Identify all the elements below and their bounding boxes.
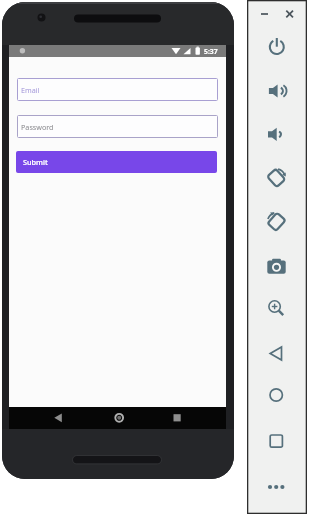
button[interactable] bbox=[264, 255, 289, 279]
staticText: Submit bbox=[23, 157, 48, 167]
staticText: Password bbox=[21, 122, 54, 132]
button[interactable] bbox=[43, 407, 73, 429]
button[interactable] bbox=[264, 210, 289, 234]
button[interactable] bbox=[162, 407, 192, 429]
button[interactable] bbox=[264, 429, 289, 453]
button[interactable] bbox=[264, 294, 289, 318]
button[interactable] bbox=[264, 383, 289, 407]
button[interactable]: Submit bbox=[16, 151, 217, 173]
button[interactable] bbox=[104, 407, 134, 429]
button[interactable] bbox=[282, 7, 296, 21]
button[interactable] bbox=[257, 7, 271, 21]
button[interactable] bbox=[264, 166, 289, 190]
button[interactable] bbox=[264, 35, 289, 59]
button[interactable] bbox=[264, 79, 289, 103]
staticText: 5:37 bbox=[204, 47, 218, 56]
button[interactable] bbox=[264, 475, 289, 499]
staticText: Email bbox=[21, 85, 40, 95]
button[interactable]: Password bbox=[17, 115, 218, 138]
button[interactable] bbox=[264, 122, 289, 146]
button[interactable] bbox=[264, 341, 289, 365]
button[interactable]: Email bbox=[17, 78, 218, 101]
